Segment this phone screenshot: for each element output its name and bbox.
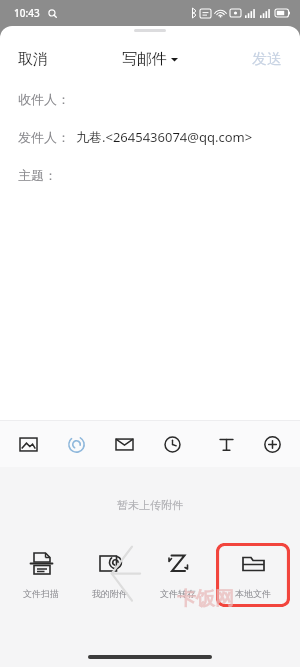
button[interactable]: 发件人：: [0, 118, 300, 156]
button[interactable]: Timed send: [158, 430, 186, 458]
button[interactable]: 发送: [242, 44, 292, 75]
staticText: 文件扫描: [23, 588, 59, 599]
button[interactable]: Text format: [212, 430, 240, 458]
staticText: 10:43: [14, 6, 40, 20]
button[interactable]: 主题：: [0, 156, 300, 194]
button[interactable]: 我的附件: [77, 543, 143, 607]
staticText: 发送: [252, 50, 282, 69]
staticText: 文件转存: [160, 588, 196, 599]
button[interactable]: 本地文件: [235, 543, 271, 607]
button[interactable]: 收件人：: [0, 80, 300, 118]
button[interactable]: Mail: [110, 430, 138, 458]
staticText: 暂未上传附件: [117, 498, 183, 512]
button[interactable]: 写邮件: [114, 44, 186, 75]
staticText: 收件人：: [18, 91, 70, 107]
button[interactable]: 文件扫描: [8, 543, 74, 607]
button[interactable]: Attachment: [62, 430, 90, 458]
button[interactable]: More: [258, 430, 286, 458]
button[interactable]: Insert image: [14, 430, 42, 458]
staticText: 我的附件: [92, 588, 128, 599]
button[interactable]: 取消: [8, 44, 58, 75]
staticText: 卡饭网: [177, 587, 234, 611]
staticText: 写邮件: [122, 50, 167, 69]
button[interactable]: 文件转存: [145, 543, 211, 607]
staticText: 九巷.<2645436074@qq.com>: [76, 128, 253, 146]
staticText: 本地文件: [235, 588, 271, 599]
staticText: 取消: [18, 50, 48, 69]
staticText: 主题：: [18, 167, 57, 183]
staticText: 发件人：: [18, 129, 70, 145]
